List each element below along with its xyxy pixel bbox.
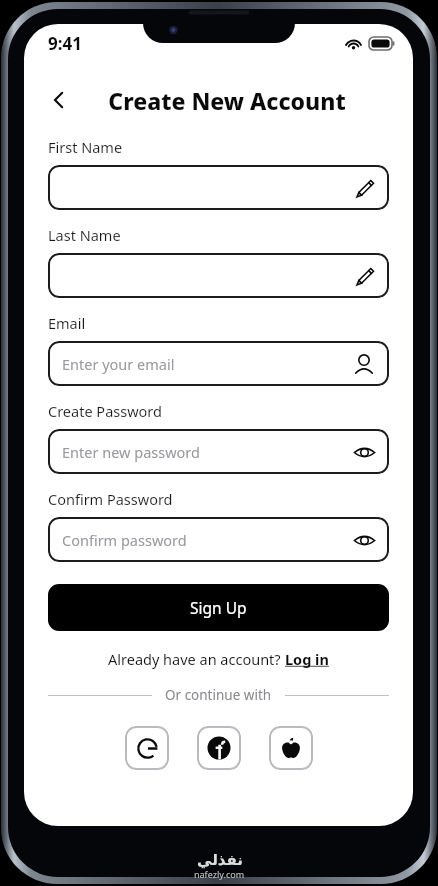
- button[interactable]: Confirm password: [48, 517, 389, 562]
- staticText: نفذلي: [197, 851, 243, 868]
- staticText: Sign Up: [190, 597, 247, 618]
- button[interactable]: Edit: [354, 178, 375, 199]
- button[interactable]: Sign Up: [48, 584, 389, 631]
- staticText: Last Name: [48, 225, 121, 245]
- staticText: First Name: [48, 137, 123, 157]
- button[interactable]: Sign up with Google: [125, 726, 169, 770]
- staticText: Already have an account?: [108, 649, 285, 669]
- button[interactable]: Sign up with Facebook: [197, 726, 241, 770]
- staticText: 9:41: [48, 32, 82, 55]
- button[interactable]: Enter new password: [48, 429, 389, 474]
- button[interactable]: Log in: [285, 649, 329, 669]
- button[interactable]: Back: [42, 83, 76, 117]
- staticText: Confirm Password: [48, 489, 173, 509]
- button[interactable]: Edit: [48, 253, 389, 298]
- button[interactable]: Edit: [48, 165, 389, 210]
- button[interactable]: Enter your email: [48, 341, 389, 386]
- staticText: Enter your email: [62, 354, 175, 374]
- staticText: nafezly.com: [194, 868, 245, 880]
- button[interactable]: Sign up with Apple: [269, 726, 313, 770]
- staticText: Log in: [285, 649, 329, 669]
- button[interactable]: Edit: [354, 266, 375, 287]
- staticText: Enter new password: [62, 442, 200, 462]
- staticText: Create Password: [48, 401, 162, 421]
- button[interactable]: Show password: [353, 441, 376, 464]
- button[interactable]: Show password: [353, 529, 376, 552]
- staticText: Email: [48, 313, 86, 333]
- staticText: Create New Account: [108, 85, 346, 116]
- button[interactable]: User: [353, 353, 375, 375]
- staticText: Or continue with: [165, 686, 272, 704]
- staticText: Confirm password: [62, 530, 187, 550]
